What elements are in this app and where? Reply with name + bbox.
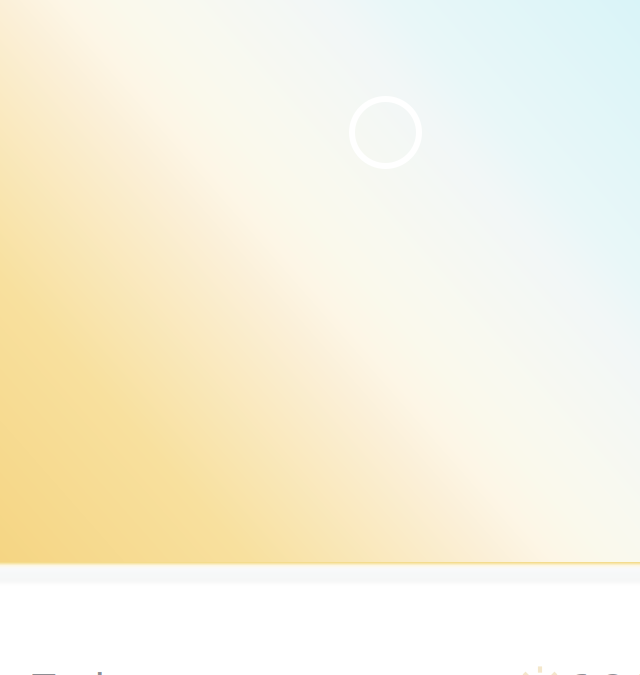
staticText: Today — [32, 659, 151, 675]
button[interactable]: Today — [0, 642, 640, 675]
staticText: 6:24 — [566, 659, 640, 675]
